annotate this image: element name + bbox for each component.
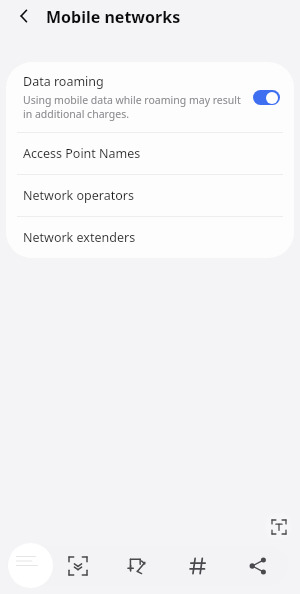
button[interactable]: Network operators — [6, 175, 294, 216]
button[interactable]: Access Point Names — [6, 133, 294, 174]
button[interactable]: Back — [8, 0, 40, 32]
button[interactable]: Scan text — [47, 545, 108, 586]
staticText: Using mobile data while roaming may resu… — [23, 93, 245, 121]
button[interactable]: Tags — [168, 545, 228, 586]
button[interactable]: Data roaming toggle, on — [253, 90, 280, 105]
button[interactable]: Data roaming — [6, 62, 294, 132]
button[interactable]: Document preview — [8, 543, 53, 588]
staticText: Network extenders — [23, 229, 136, 246]
staticText: Data roaming — [23, 73, 104, 90]
button[interactable]: Crop and edit — [108, 545, 168, 586]
button[interactable]: Extract text — [265, 513, 292, 540]
staticText: Access Point Names — [23, 145, 141, 162]
staticText: Network operators — [23, 187, 134, 204]
button[interactable]: Share — [228, 545, 288, 586]
staticText: Mobile networks — [46, 6, 181, 28]
button[interactable]: Network extenders — [6, 217, 294, 258]
